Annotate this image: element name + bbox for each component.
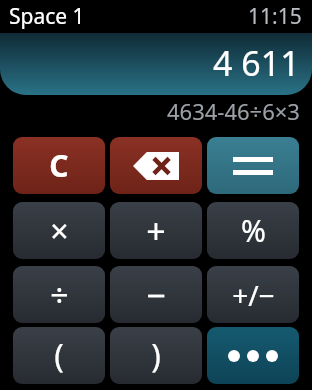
button[interactable]: Clear bbox=[13, 137, 105, 194]
staticText: 4634-46÷6×3 bbox=[167, 96, 300, 126]
staticText: × bbox=[50, 209, 69, 253]
staticText: +/− bbox=[232, 276, 275, 314]
staticText: % bbox=[241, 210, 266, 251]
button[interactable]: Toggle sign bbox=[207, 266, 299, 323]
staticText: ) bbox=[151, 334, 161, 378]
staticText: − bbox=[146, 272, 166, 318]
staticText: 11:15 bbox=[248, 2, 302, 31]
staticText: Space 1 bbox=[9, 2, 85, 31]
staticText: ( bbox=[54, 334, 64, 378]
button[interactable]: Close parenthesis bbox=[110, 327, 202, 384]
staticText: 4 611 bbox=[213, 40, 300, 86]
button[interactable]: More options bbox=[207, 327, 299, 384]
button[interactable]: Plus bbox=[110, 202, 202, 259]
button[interactable]: Open parenthesis bbox=[13, 327, 105, 384]
button[interactable]: Equals bbox=[207, 137, 299, 194]
button[interactable]: Multiply bbox=[13, 202, 105, 259]
staticText: ÷ bbox=[50, 273, 69, 317]
staticText: + bbox=[146, 208, 166, 254]
button[interactable]: Backspace bbox=[110, 137, 202, 194]
button[interactable]: Minus bbox=[110, 266, 202, 323]
button[interactable]: Percent bbox=[207, 202, 299, 259]
button[interactable]: Divide bbox=[13, 266, 105, 323]
staticText: C bbox=[49, 145, 69, 186]
